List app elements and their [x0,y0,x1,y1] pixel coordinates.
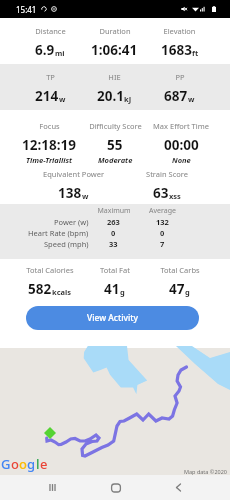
staticText: Difficulty Score [89,121,142,131]
staticText: PP [175,72,185,82]
staticText: Total Fat [100,265,130,275]
staticText: Elevation [163,26,196,36]
staticText: 687 [164,87,188,105]
staticText: None [172,155,191,165]
staticText: kcals [52,287,72,297]
staticText: Heart Rate (bpm) [28,228,89,238]
staticText: 55 [107,136,123,154]
staticText: 0 [160,228,165,238]
staticText: g [120,287,125,297]
staticText: ft [192,48,199,58]
staticText: 12:18:19 [22,136,76,154]
staticText: 1:06:41 [91,41,138,59]
staticText: Strain Score [146,169,188,179]
staticText: xss [169,191,181,201]
staticText: 47 [169,280,185,298]
staticText: w [82,191,89,201]
staticText: o [19,455,27,473]
staticText: 33 [109,239,118,249]
staticText: 6.9 [35,41,55,59]
staticText: g [27,455,36,473]
staticText: w [188,94,195,104]
staticText: l [36,455,40,473]
staticText: View Activity [87,312,139,324]
staticText: Speed (mph) [44,239,89,249]
staticText: HIE [108,72,121,82]
staticText: w [59,94,66,104]
staticText: Map data ©2020 [184,468,228,475]
staticText: Maximum [97,206,131,216]
staticText: g [185,287,190,297]
button[interactable]: Home [84,475,147,500]
staticText: Moderate [98,155,133,165]
staticText: Max Effort Time [153,121,209,131]
staticText: Total Calories [26,265,74,275]
staticText: 132 [156,217,169,227]
staticText: Distance [35,26,66,36]
staticText: 214 [35,87,59,105]
staticText: 582 [28,280,52,298]
staticText: Focus [39,121,60,131]
staticText: TP [46,72,55,82]
staticText: Equivalent Power [43,169,104,179]
staticText: 0 [111,228,116,238]
staticText: Time-Triallist [26,155,73,165]
staticText: 63 [153,184,169,202]
staticText: Average [149,206,176,216]
staticText: 15:41 [16,4,37,15]
staticText: Duration [99,26,131,36]
staticText: o [11,455,19,473]
staticText: 20.1 [97,87,124,105]
staticText: Power (w) [54,217,89,227]
staticText: kJ [124,94,132,104]
staticText: 263 [107,217,120,227]
staticText: Total Carbs [160,265,200,275]
button[interactable]: Recents [20,475,84,500]
staticText: G [1,455,11,473]
staticText: e [40,455,48,473]
staticText: 7 [160,239,165,249]
staticText: mi [55,48,65,58]
staticText: 41 [104,280,120,298]
button[interactable]: Back [147,475,210,500]
button[interactable]: View Activity [26,306,199,330]
staticText: 00:00 [164,136,199,154]
staticText: 1683 [161,41,192,59]
staticText: 138 [58,184,82,202]
